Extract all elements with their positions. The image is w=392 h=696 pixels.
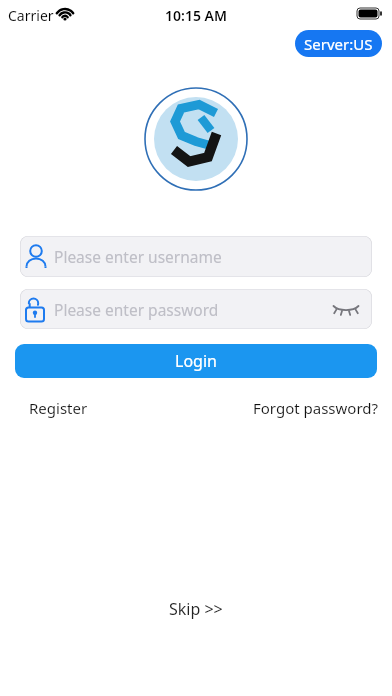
staticText: Please enter password (54, 299, 219, 320)
staticText: 10:15 AM (165, 6, 227, 25)
button[interactable]: Login (15, 344, 377, 378)
staticText: Carrier (8, 6, 54, 25)
button[interactable] (330, 297, 362, 321)
staticText: Please enter username (54, 246, 222, 267)
button[interactable]: Register (29, 398, 88, 418)
button[interactable]: Forgot password? (253, 398, 379, 418)
button[interactable]: Server:US (295, 30, 382, 57)
staticText: Server:US (304, 34, 373, 54)
button[interactable]: Please enter password (20, 289, 372, 329)
staticText: Forgot password? (253, 398, 379, 418)
staticText: Skip >> (169, 598, 223, 620)
staticText: Register (29, 398, 88, 418)
staticText: Login (175, 350, 217, 372)
button[interactable]: Please enter username (20, 236, 372, 277)
button[interactable]: Skip >> (169, 598, 223, 620)
